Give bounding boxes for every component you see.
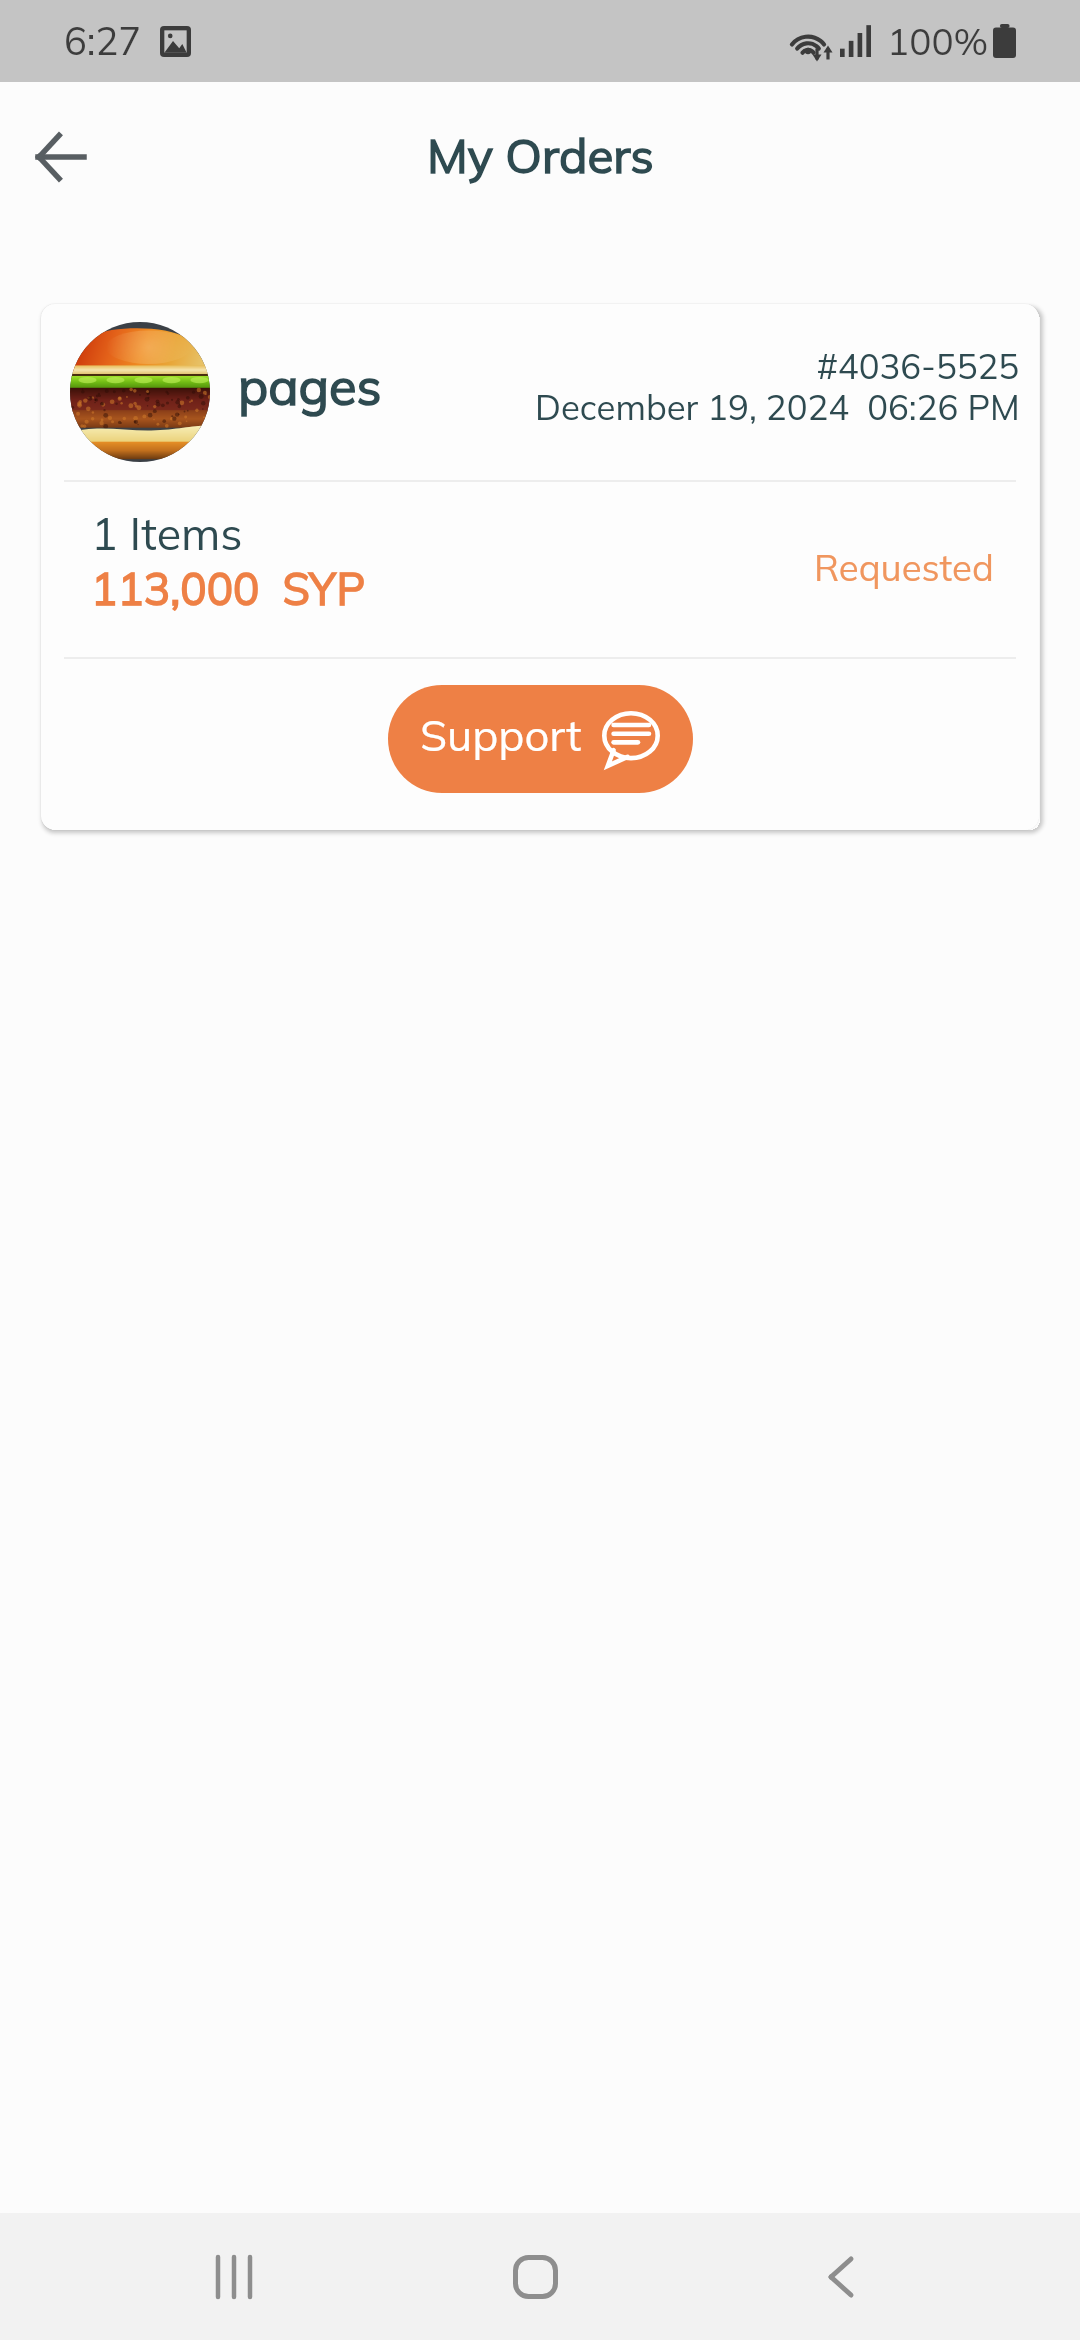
staticText: 1 Items — [91, 505, 243, 561]
staticText: pages — [238, 354, 382, 417]
staticText: My Orders — [427, 125, 654, 185]
staticText: 6:27 — [64, 17, 142, 65]
button[interactable]: Support — [388, 685, 693, 793]
button[interactable]: Back — [786, 2222, 896, 2332]
staticText: Support — [420, 707, 582, 762]
button[interactable]: Recent apps — [179, 2222, 289, 2332]
staticText: 113,000 SYP — [91, 561, 366, 616]
button[interactable]: Back — [16, 112, 106, 202]
staticText: 100% — [887, 18, 989, 64]
staticText: December 19, 2024 06:26 PM — [535, 385, 1020, 429]
button[interactable]: pages — [41, 304, 1039, 830]
staticText: Requested — [814, 544, 994, 590]
staticText: #4036-5525 — [817, 344, 1020, 388]
button[interactable]: Home — [480, 2222, 590, 2332]
